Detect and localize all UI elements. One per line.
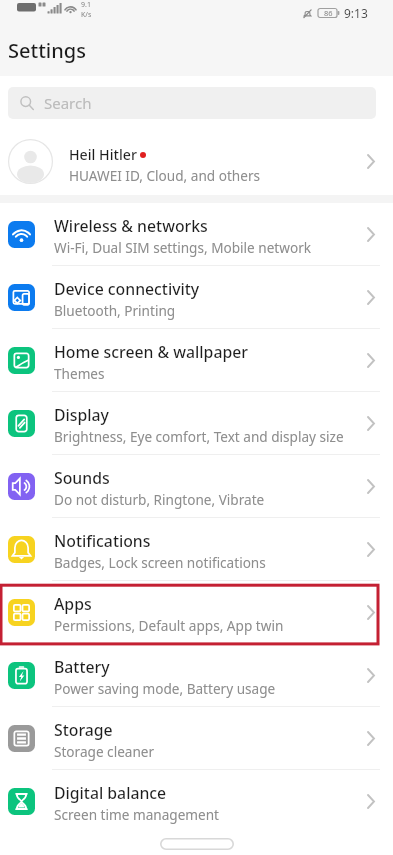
staticText: Storage xyxy=(54,719,113,741)
staticText: Screen time management xyxy=(54,805,219,824)
staticText: 86 xyxy=(324,8,333,18)
staticText: Permissions, Default apps, App twin xyxy=(54,616,284,635)
button[interactable]: Heil Hitler xyxy=(0,128,393,195)
staticText: Wireless & networks xyxy=(54,215,208,237)
button[interactable]: Home screen & wallpaper xyxy=(0,329,393,392)
button[interactable]: Notifications xyxy=(0,518,393,581)
button[interactable]: Storage xyxy=(0,707,393,770)
staticText: Sounds xyxy=(54,467,110,489)
staticText: HUAWEI ID, Cloud, and others xyxy=(69,166,261,185)
staticText: Do not disturb, Ringtone, Vibrate xyxy=(54,490,265,509)
button[interactable]: Apps xyxy=(0,581,393,644)
staticText: Bluetooth, Printing xyxy=(54,301,176,320)
staticText: Power saving mode, Battery usage xyxy=(54,679,276,698)
staticText: Brightness, Eye comfort, Text and displa… xyxy=(54,427,344,446)
staticText: Storage cleaner xyxy=(54,742,155,761)
button[interactable]: Digital balance xyxy=(0,770,393,833)
staticText: Settings xyxy=(8,37,86,64)
button[interactable]: Battery xyxy=(0,644,393,707)
staticText: Digital balance xyxy=(54,782,167,804)
staticText: Display xyxy=(54,404,109,426)
button[interactable]: Sounds xyxy=(0,455,393,518)
button[interactable]: Display xyxy=(0,392,393,455)
staticText: 9:13 xyxy=(344,5,368,21)
staticText: Search xyxy=(44,93,92,113)
staticText: Home screen & wallpaper xyxy=(54,341,248,363)
staticText: K/s xyxy=(81,10,92,20)
staticText: Badges, Lock screen notifications xyxy=(54,553,266,572)
staticText: Device connectivity xyxy=(54,278,200,300)
staticText: Themes xyxy=(54,364,105,383)
staticText: Heil Hitler xyxy=(69,145,137,164)
button[interactable]: Wireless & networks xyxy=(0,203,393,266)
staticText: 9.1 xyxy=(81,0,91,10)
staticText: Wi-Fi, Dual SIM settings, Mobile network xyxy=(54,238,312,257)
staticText: Battery xyxy=(54,656,110,678)
staticText: Apps xyxy=(54,593,92,615)
button[interactable]: Device connectivity xyxy=(0,266,393,329)
button[interactable]: Search xyxy=(8,87,376,119)
staticText: Notifications xyxy=(54,530,151,552)
